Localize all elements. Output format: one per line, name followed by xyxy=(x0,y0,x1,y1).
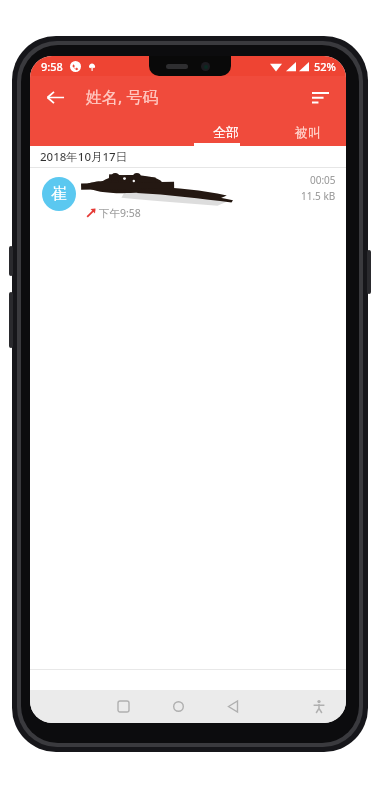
staticText: 被叫 xyxy=(295,124,321,140)
button[interactable]: Recent apps xyxy=(104,690,142,723)
staticText: 全部 xyxy=(213,124,239,140)
button[interactable]: 全部 xyxy=(182,118,270,146)
staticText: 52% xyxy=(314,59,336,74)
staticText: 00:05 xyxy=(310,173,336,187)
button[interactable]: 被叫 xyxy=(270,118,346,146)
staticText: 11.5 kB xyxy=(301,189,336,203)
button[interactable]: Back xyxy=(214,690,252,723)
staticText: 下午9:58 xyxy=(99,206,141,220)
button[interactable]: Sort xyxy=(301,78,339,116)
staticText: 崔 xyxy=(51,184,67,204)
button[interactable]: 崔 xyxy=(30,168,346,226)
staticText: 姓名, 号码 xyxy=(86,86,159,108)
button[interactable]: Back xyxy=(36,78,74,116)
staticText: 2018年10月17日 xyxy=(40,149,128,165)
staticText: 9:58 xyxy=(41,59,63,74)
button[interactable]: Accessibility xyxy=(300,690,338,723)
button[interactable]: Home xyxy=(159,690,197,723)
button[interactable]: 姓名, 号码 xyxy=(86,76,159,118)
